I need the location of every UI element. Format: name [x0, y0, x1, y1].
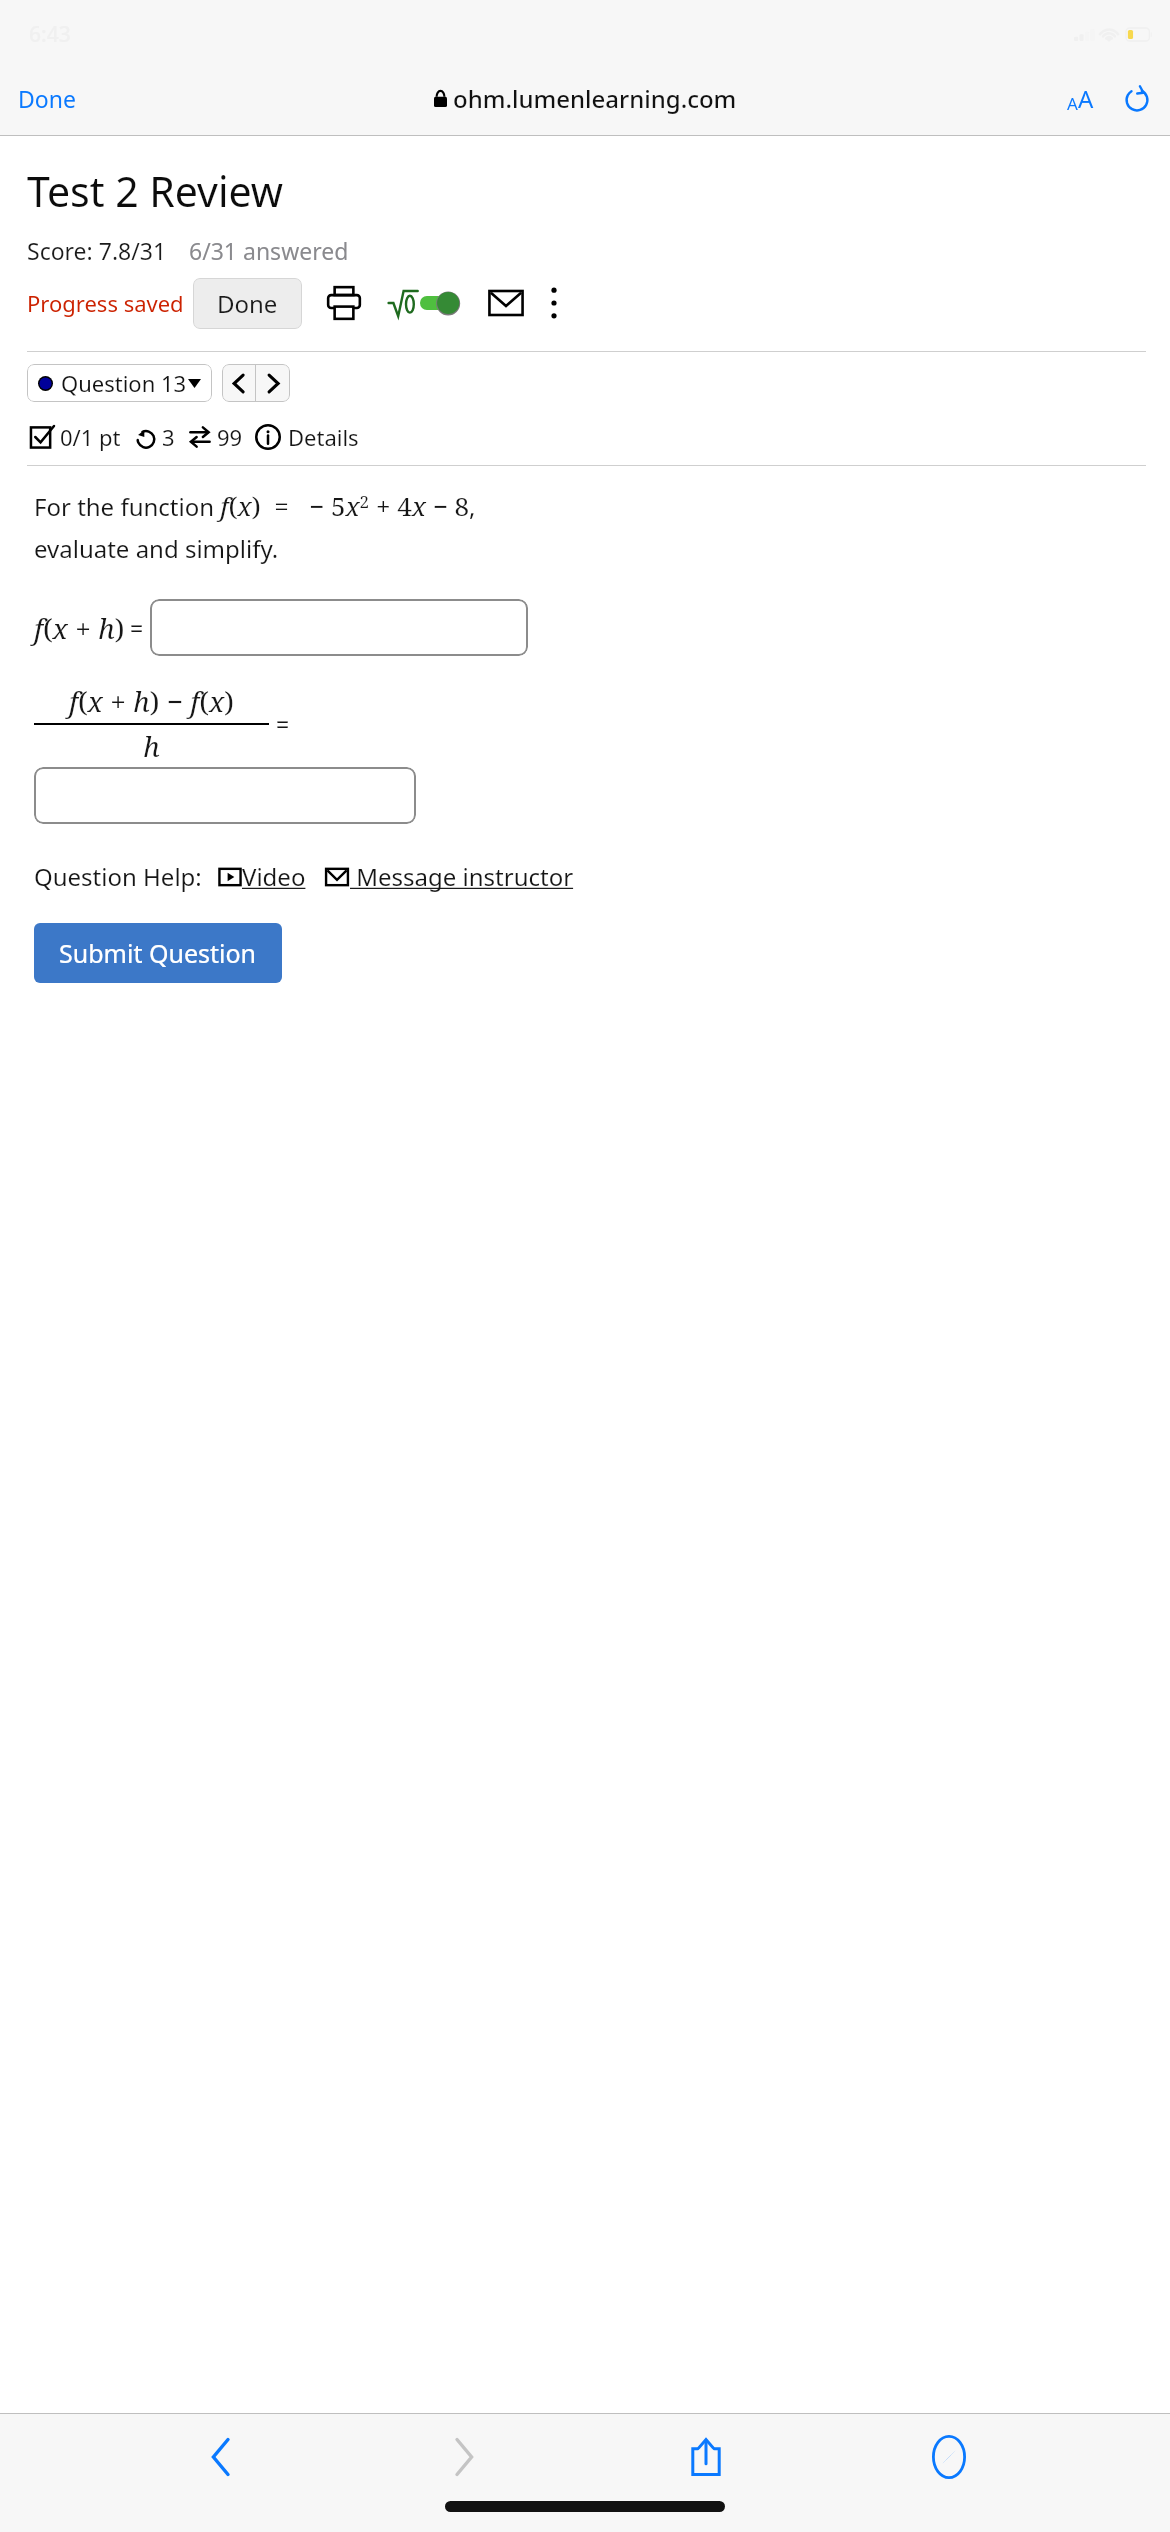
- button[interactable]: Submit Question: [34, 923, 282, 983]
- button[interactable]: Answer input: [150, 599, 528, 656]
- button[interactable]: Next question: [256, 364, 290, 402]
- staticText: f(x + h) − f(x): [69, 682, 234, 720]
- staticText: For the function f(x) = − 5x2 + 4x − 8, …: [34, 488, 476, 565]
- staticText: Question Help:: [34, 860, 202, 893]
- button[interactable]: Done: [193, 278, 302, 329]
- staticText: Details: [288, 422, 359, 452]
- button[interactable]: ohm.lumenlearning.com: [428, 77, 743, 120]
- button[interactable]: Details: [255, 422, 359, 452]
- button[interactable]: Question 13: [27, 364, 212, 402]
- button[interactable]: Share: [675, 2426, 737, 2488]
- staticText: Submit Question: [59, 936, 257, 970]
- staticText: Done: [217, 287, 278, 320]
- staticText: A: [1067, 92, 1078, 115]
- button[interactable]: Answer input: [34, 767, 416, 824]
- button[interactable]: More options: [543, 281, 565, 325]
- button[interactable]: Print: [323, 282, 365, 324]
- button[interactable]: Message: [485, 285, 527, 321]
- button[interactable]: Previous question: [222, 364, 255, 402]
- staticText: 99: [217, 422, 243, 452]
- staticText: =: [276, 708, 290, 739]
- button[interactable]: Done: [15, 77, 79, 120]
- staticText: Message instructor: [350, 860, 574, 893]
- button[interactable]: Text size: [1063, 76, 1098, 121]
- staticText: Progress saved: [27, 288, 184, 318]
- staticText: =: [130, 612, 144, 643]
- button[interactable]: Forward: [433, 2426, 495, 2488]
- button[interactable]: Reload: [1120, 82, 1154, 116]
- staticText: A: [1078, 82, 1094, 115]
- staticText: Test 2 Review: [27, 163, 284, 219]
- staticText: 3: [162, 422, 175, 452]
- staticText: 0/1 pt: [60, 422, 121, 452]
- button[interactable]: Back: [190, 2426, 252, 2488]
- button[interactable]: Video: [218, 860, 306, 893]
- button[interactable]: Message instructor: [324, 860, 574, 893]
- staticText: Video: [242, 860, 306, 893]
- staticText: Score: 7.8/31: [27, 235, 167, 266]
- staticText: 6/31 answered: [189, 235, 349, 266]
- staticText: f(x + h): [34, 609, 125, 647]
- staticText: h: [143, 727, 160, 765]
- button[interactable]: Math keyboard toggle: [385, 285, 467, 321]
- button[interactable]: Open in Safari: [918, 2426, 980, 2488]
- staticText: ohm.lumenlearning.com: [453, 82, 737, 115]
- staticText: Question 13: [61, 368, 188, 398]
